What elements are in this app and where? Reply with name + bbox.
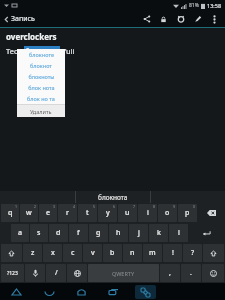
button[interactable]: Enter (189, 224, 224, 242)
button[interactable]: g (89, 224, 108, 242)
button[interactable]: p (178, 204, 197, 222)
button[interactable]: o (158, 204, 177, 222)
button[interactable]: k (149, 224, 168, 242)
button[interactable]: блокнот (17, 60, 65, 71)
button[interactable]: d (49, 224, 68, 242)
staticText: ? (191, 248, 195, 258)
button[interactable]: Voice input (25, 264, 45, 282)
staticText: h (116, 228, 121, 238)
button[interactable]: z (23, 244, 42, 262)
button[interactable]: j (129, 224, 148, 242)
button[interactable]: Home (65, 283, 97, 300)
staticText: , (169, 268, 171, 278)
staticText: s (37, 228, 41, 238)
button[interactable]: блокноте (17, 49, 65, 60)
staticText: z (31, 248, 35, 258)
staticText: overclockers (6, 31, 57, 42)
staticText: 1 (15, 204, 18, 209)
staticText: k (157, 228, 161, 238)
staticText: g (96, 228, 101, 238)
button[interactable]: l (169, 224, 188, 242)
button[interactable]: ! (163, 244, 182, 262)
button[interactable]: Emoji (202, 264, 224, 282)
button[interactable]: ? (183, 244, 202, 262)
staticText: r (66, 208, 69, 218)
button[interactable]: Change language (67, 264, 87, 282)
staticText: QWERTY (112, 270, 135, 277)
staticText: Тест (6, 46, 24, 56)
button[interactable]: q (1, 204, 19, 222)
staticText: Yuli (60, 46, 75, 56)
button[interactable]: блок нота (17, 82, 65, 93)
staticText: q (8, 208, 13, 218)
staticText: блокноте (29, 51, 54, 58)
button[interactable]: v (83, 244, 102, 262)
staticText: j (138, 228, 140, 238)
staticText: блок нота (28, 84, 55, 91)
staticText: b (110, 248, 115, 258)
staticText: 4 (73, 204, 76, 209)
button[interactable]: Back (0, 283, 33, 300)
staticText: 13:58 (207, 2, 222, 9)
button[interactable]: Share (138, 11, 155, 27)
button[interactable]: x (43, 244, 62, 262)
button[interactable]: блокнота (75, 191, 150, 203)
button[interactable]: , (160, 264, 180, 282)
button[interactable]: Backspace (198, 204, 224, 222)
button[interactable]: n (123, 244, 142, 262)
button[interactable]: блокноты (17, 71, 65, 82)
button[interactable]: блок но та (17, 93, 65, 104)
button[interactable]: w (20, 204, 38, 222)
button[interactable]: h (109, 224, 128, 242)
staticText: d (56, 228, 61, 238)
button[interactable]: Edit (189, 11, 206, 27)
staticText: 2 (34, 204, 37, 209)
button[interactable]: Reminder (172, 11, 189, 27)
staticText: e (46, 208, 51, 218)
button[interactable]: y (98, 204, 117, 222)
button[interactable]: s (30, 224, 48, 242)
button[interactable]: Recents (97, 283, 129, 300)
button[interactable]: t (78, 204, 97, 222)
staticText: o (165, 208, 170, 218)
staticText: ?123 (7, 270, 18, 277)
button[interactable]: Multi window (135, 285, 156, 299)
button[interactable]: Shift right (203, 244, 224, 262)
staticText: l (178, 228, 180, 238)
staticText: n (130, 248, 135, 258)
button[interactable]: u (118, 204, 137, 222)
staticText: блокноты (28, 73, 55, 80)
button[interactable]: Lock (155, 11, 172, 27)
button[interactable]: r (58, 204, 77, 222)
staticText: 9 (173, 204, 176, 209)
button[interactable]: More options (206, 11, 223, 27)
button[interactable]: f (69, 224, 88, 242)
button[interactable]: i (138, 204, 157, 222)
button[interactable]: Back (0, 14, 39, 24)
button[interactable]: / (46, 264, 66, 282)
button[interactable]: Удалить (17, 105, 65, 117)
staticText: . (190, 268, 192, 278)
button[interactable]: b (103, 244, 122, 262)
button[interactable]: QWERTY (88, 264, 159, 282)
staticText: 7 (133, 204, 136, 209)
button[interactable]: ?123 (1, 264, 24, 282)
staticText: ! (172, 248, 174, 258)
staticText: u (125, 208, 130, 218)
staticText: w (26, 208, 32, 218)
staticText: Запись (11, 14, 35, 24)
staticText: y (106, 208, 110, 218)
staticText: Удалить (30, 108, 52, 115)
button[interactable]: a (11, 224, 29, 242)
staticText: v (91, 248, 95, 258)
button[interactable]: Shift (1, 244, 22, 262)
button[interactable]: Minimize (33, 283, 65, 300)
button[interactable]: m (143, 244, 162, 262)
staticText: 0 (193, 204, 196, 209)
button[interactable]: c (63, 244, 82, 262)
button[interactable]: e (39, 204, 57, 222)
staticText: / (55, 268, 58, 278)
button[interactable]: . (181, 264, 201, 282)
